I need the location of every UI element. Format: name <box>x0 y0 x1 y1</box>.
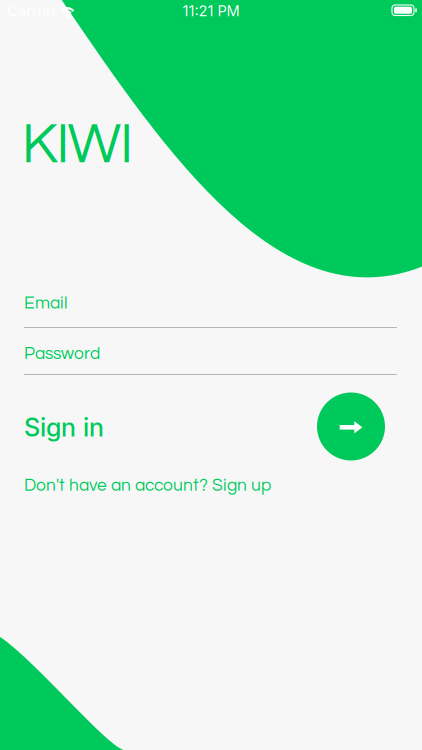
staticText: KIWI <box>22 116 133 174</box>
staticText: Password <box>24 345 100 363</box>
staticText: Sign in <box>24 412 104 443</box>
staticText: 11:21 PM <box>182 2 239 20</box>
button[interactable]: Sign in <box>24 412 104 443</box>
staticText: Email <box>24 294 68 312</box>
button[interactable]: Continue <box>317 392 385 460</box>
staticText: Don't have an account? Sign up <box>24 476 271 494</box>
button[interactable]: Don't have an account? Sign up <box>24 476 271 494</box>
